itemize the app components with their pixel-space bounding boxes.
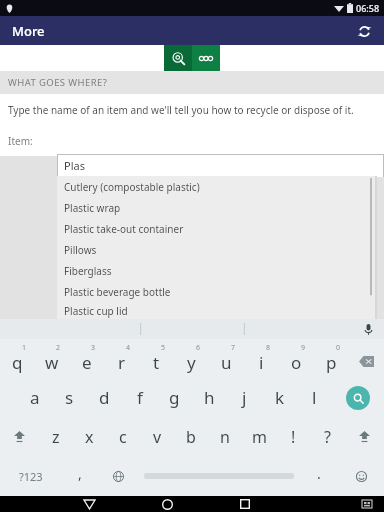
button[interactable]: Recents [225, 496, 265, 512]
button[interactable]: Plastic beverage bottle [57, 281, 377, 302]
button[interactable]: Home [147, 496, 187, 512]
button[interactable]: j [227, 378, 262, 417]
button[interactable]: 9 [279, 339, 314, 378]
staticText: Item: [8, 134, 33, 148]
button[interactable]: Pillows [57, 239, 377, 260]
staticText: r [118, 351, 126, 374]
button[interactable]: Plastic cup lid [57, 302, 377, 319]
button[interactable]: Plastic take-out container [57, 218, 377, 239]
button[interactable]: 6 [174, 339, 209, 378]
staticText: e [82, 351, 92, 374]
button[interactable]: s [52, 378, 87, 417]
button[interactable]: 5 [139, 339, 174, 378]
staticText: z [52, 426, 60, 448]
staticText: g [169, 386, 180, 409]
button[interactable]: Refresh [350, 17, 378, 45]
button[interactable]: Backspace [349, 339, 384, 378]
button[interactable]: ? [310, 417, 344, 456]
button[interactable]: Space [137, 456, 300, 496]
staticText: m [252, 426, 267, 448]
staticText: j [242, 386, 247, 409]
button[interactable]: , [61, 456, 99, 496]
button[interactable]: k [262, 378, 297, 417]
button[interactable]: . [300, 456, 338, 496]
staticText: 06:58 [356, 2, 380, 14]
staticText: 7 [231, 343, 236, 353]
button[interactable]: h [192, 378, 227, 417]
button[interactable]: 2 [34, 339, 69, 378]
staticText: Plastic wrap [64, 201, 121, 215]
staticText: k [275, 386, 285, 409]
button[interactable]: Plas [57, 154, 384, 177]
staticText: v [153, 426, 162, 448]
staticText: WHAT GOES WHERE? [8, 76, 108, 89]
button[interactable]: Emoji [338, 456, 384, 496]
staticText: w [45, 351, 59, 374]
button[interactable]: d [87, 378, 122, 417]
button[interactable]: Fiberglass [57, 260, 377, 281]
staticText: 4 [126, 343, 131, 353]
button[interactable]: l [297, 378, 332, 417]
staticText: Plastic take-out container [64, 222, 184, 236]
staticText: Cutlery (compostable plastic) [64, 180, 200, 194]
staticText: s [65, 386, 74, 409]
staticText: , [78, 464, 82, 483]
button[interactable]: Search [332, 378, 384, 417]
staticText: 3 [91, 343, 96, 353]
button[interactable]: Shift [0, 417, 39, 456]
staticText: Pillows [64, 243, 97, 257]
staticText: 0 [336, 343, 341, 353]
button[interactable]: ! [276, 417, 310, 456]
button[interactable]: Shift [344, 417, 384, 456]
staticText: l [312, 386, 317, 409]
button[interactable]: m [242, 417, 276, 456]
button[interactable]: 4 [104, 339, 139, 378]
button[interactable]: Plastic wrap [57, 197, 377, 218]
staticText: x [85, 426, 94, 448]
button[interactable]: Change language [99, 456, 137, 496]
button[interactable]: Switch keyboard [354, 496, 380, 512]
button[interactable]: Search [164, 45, 192, 71]
button[interactable]: Cutlery (compostable plastic) [57, 176, 377, 197]
button[interactable]: f [122, 378, 157, 417]
button[interactable]: v [140, 417, 174, 456]
button[interactable]: Back [69, 496, 109, 512]
staticText: h [204, 386, 215, 409]
staticText: 1 [22, 343, 27, 353]
staticText: Fiberglass [64, 264, 112, 278]
button[interactable]: z [39, 417, 72, 456]
button[interactable]: c [106, 417, 140, 456]
button[interactable]: g [157, 378, 192, 417]
staticText: i [259, 351, 264, 374]
button[interactable]: 8 [244, 339, 279, 378]
button[interactable]: x [72, 417, 106, 456]
staticText: d [99, 386, 110, 409]
staticText: f [137, 386, 143, 409]
staticText: ? [324, 426, 331, 448]
staticText: Plastic cup lid [64, 304, 128, 318]
staticText: c [119, 426, 127, 448]
button[interactable]: ?123 [0, 456, 61, 496]
button[interactable]: 7 [209, 339, 244, 378]
button[interactable]: n [208, 417, 242, 456]
staticText: y [187, 351, 196, 374]
staticText: Plas [64, 158, 85, 173]
button[interactable]: Voice input [360, 321, 376, 337]
button[interactable]: More options [192, 45, 220, 71]
staticText: u [221, 351, 232, 374]
staticText: 6 [196, 343, 201, 353]
staticText: . [317, 464, 321, 483]
staticText: q [12, 351, 23, 374]
button[interactable]: b [174, 417, 208, 456]
staticText: Plastic beverage bottle [64, 285, 171, 299]
button[interactable]: a [17, 378, 52, 417]
button[interactable]: 3 [69, 339, 104, 378]
staticText: n [220, 426, 230, 448]
staticText: 5 [161, 343, 166, 353]
staticText: o [291, 351, 302, 374]
button[interactable]: 0 [314, 339, 349, 378]
staticText: t [153, 351, 160, 374]
staticText: ?123 [19, 469, 43, 484]
staticText: a [30, 386, 40, 409]
button[interactable]: 1 [0, 339, 34, 378]
